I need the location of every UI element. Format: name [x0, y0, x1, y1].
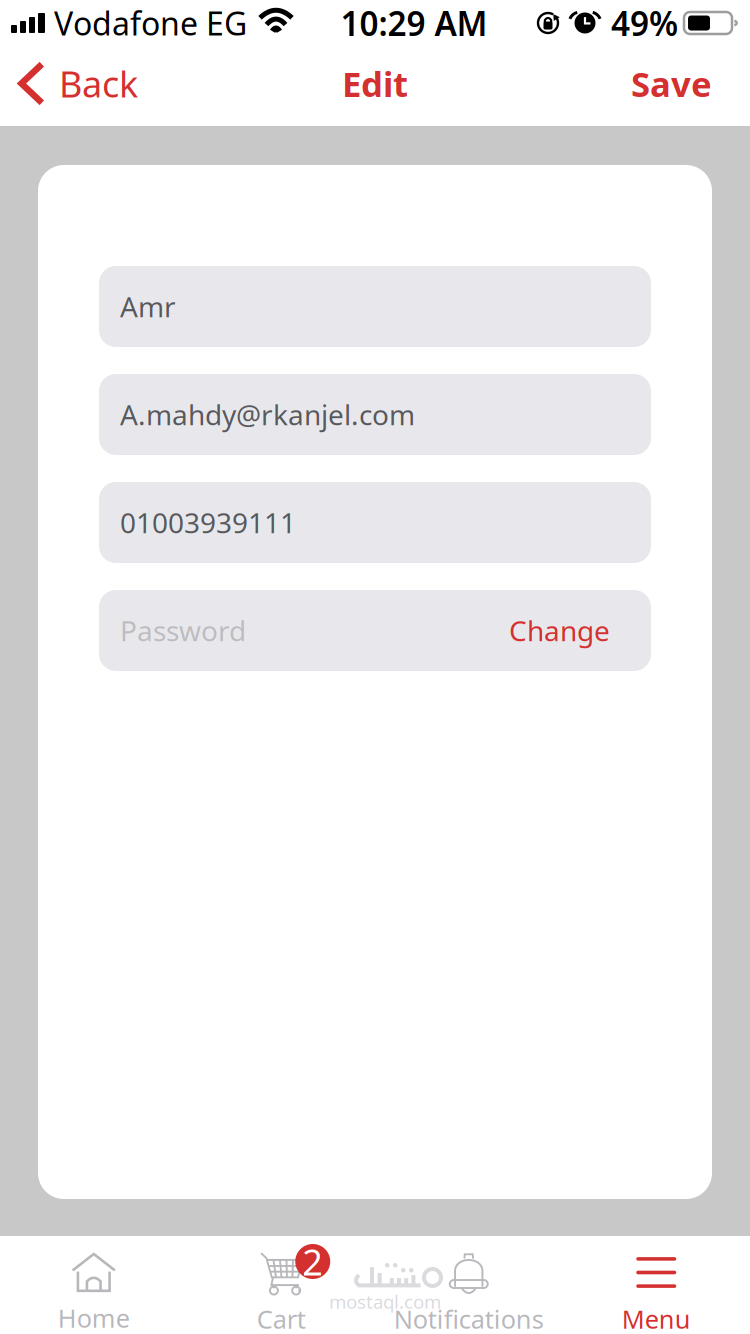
staticText: Save [631, 60, 712, 106]
staticText: Cart [257, 1302, 306, 1334]
button[interactable]: Save [607, 46, 750, 126]
staticText: Notifications [394, 1302, 544, 1334]
button[interactable]: Menu [562, 1236, 750, 1334]
button[interactable]: Notifications [375, 1236, 562, 1334]
button[interactable]: Home [0, 1236, 187, 1334]
staticText: Amr [120, 288, 176, 325]
staticText: Home [58, 1301, 130, 1334]
staticText: 10:29 AM [340, 1, 487, 45]
staticText: A.mahdy@rkanjel.com [120, 396, 415, 433]
button[interactable]: 2 [187, 1236, 375, 1334]
button[interactable]: Back [0, 46, 160, 126]
staticText: Vodafone EG [54, 2, 247, 44]
staticText: Back [59, 60, 138, 107]
button[interactable]: Change [509, 602, 610, 659]
staticText: 2 [302, 1238, 323, 1285]
staticText: mostaql.com [329, 1289, 441, 1314]
staticText: Menu [622, 1302, 691, 1334]
staticText: Edit [342, 60, 408, 106]
staticText: 49% [611, 1, 678, 45]
staticText: Password [120, 612, 246, 649]
staticText: 01003939111 [120, 504, 296, 541]
staticText: Change [509, 612, 610, 649]
